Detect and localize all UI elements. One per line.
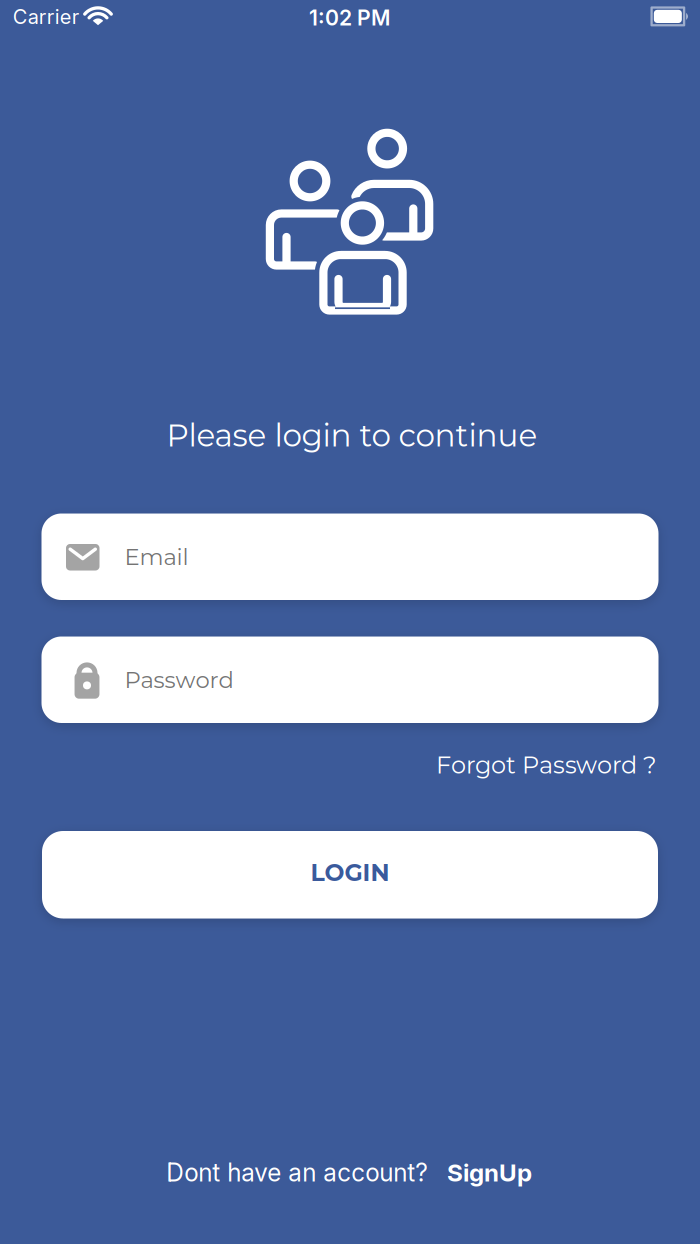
staticText: Email xyxy=(124,543,188,570)
button[interactable]: Forgot Password ? xyxy=(257,750,657,780)
staticText: Dont have an account? xyxy=(166,1158,428,1188)
button[interactable]: LOGIN xyxy=(42,831,658,918)
staticText: Password xyxy=(124,666,233,693)
staticText: LOGIN xyxy=(310,858,389,887)
staticText: 1:02 PM xyxy=(309,5,390,31)
button[interactable]: Dont have an account? xyxy=(150,1151,550,1195)
button[interactable]: Email xyxy=(41,513,658,600)
staticText: Carrier xyxy=(13,5,79,29)
staticText: Please login to continue xyxy=(166,416,537,454)
button[interactable]: Password xyxy=(41,636,658,723)
staticText: SignUp xyxy=(447,1158,532,1187)
staticText: Forgot Password ? xyxy=(436,750,657,780)
